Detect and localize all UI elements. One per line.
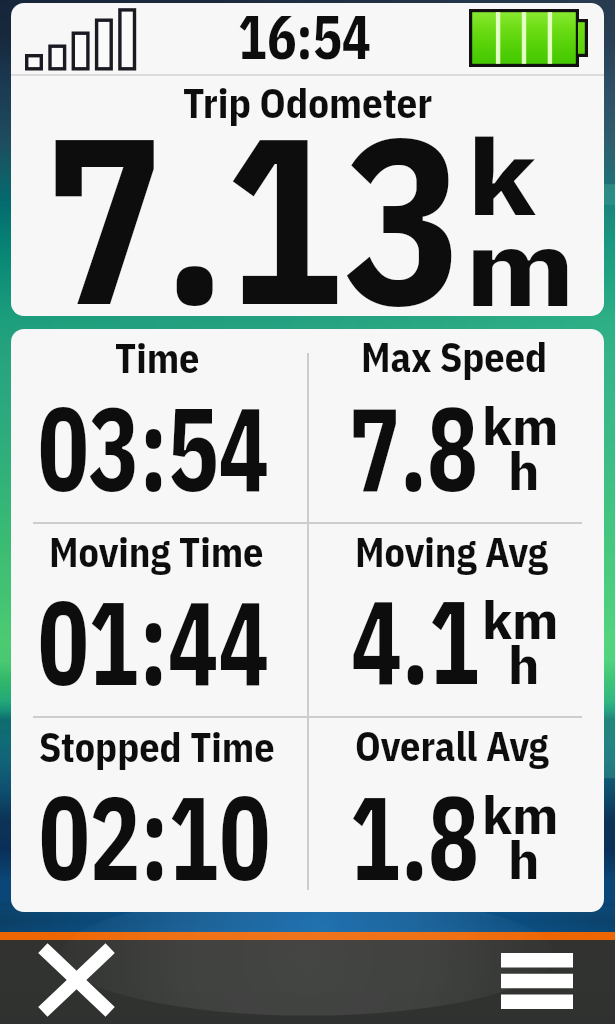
staticText: km: [482, 392, 559, 460]
staticText: 02:10: [39, 760, 270, 912]
button[interactable]: Overall Avg: [308, 718, 604, 912]
staticText: h: [508, 437, 540, 505]
staticText: h: [508, 631, 540, 699]
staticText: km: [482, 586, 559, 654]
button[interactable]: Moving Time: [11, 523, 308, 717]
staticText: Trip Odometer: [183, 76, 433, 129]
staticText: 16:54: [238, 3, 372, 76]
staticText: h: [508, 826, 540, 894]
staticText: Overall Avg: [355, 720, 549, 772]
staticText: Moving Time: [49, 526, 264, 578]
staticText: 4.1: [351, 564, 481, 716]
staticText: k: [467, 107, 537, 244]
other: Signal strength: [25, 5, 150, 71]
staticText: 03:54: [38, 371, 269, 523]
staticText: 1.8: [350, 760, 480, 912]
button[interactable]: Menu: [490, 942, 584, 1020]
staticText: Time: [115, 332, 200, 384]
other: Battery full: [469, 9, 589, 67]
staticText: m: [465, 198, 575, 316]
staticText: km: [482, 781, 559, 849]
button[interactable]: Moving Avg: [308, 523, 604, 717]
staticText: 01:44: [38, 565, 269, 717]
button[interactable]: Time: [11, 329, 308, 523]
button[interactable]: Close: [30, 941, 122, 1019]
staticText: Max Speed: [361, 331, 548, 383]
staticText: Moving Avg: [355, 526, 548, 578]
staticText: 7.13: [45, 63, 463, 316]
staticText: Stopped Time: [39, 721, 275, 773]
button[interactable]: Max Speed: [308, 329, 604, 523]
staticText: 7.8: [349, 371, 479, 523]
button[interactable]: Stopped Time: [11, 718, 308, 912]
